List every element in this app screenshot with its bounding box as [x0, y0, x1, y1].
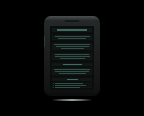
button[interactable] — [53, 83, 91, 84]
button[interactable] — [50, 26, 94, 90]
button[interactable] — [53, 87, 91, 88]
button[interactable] — [53, 85, 91, 86]
